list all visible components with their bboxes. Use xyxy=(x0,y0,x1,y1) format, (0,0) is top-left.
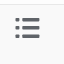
button[interactable] xyxy=(0,32,64,40)
button[interactable] xyxy=(0,15,64,23)
button[interactable] xyxy=(0,24,64,32)
